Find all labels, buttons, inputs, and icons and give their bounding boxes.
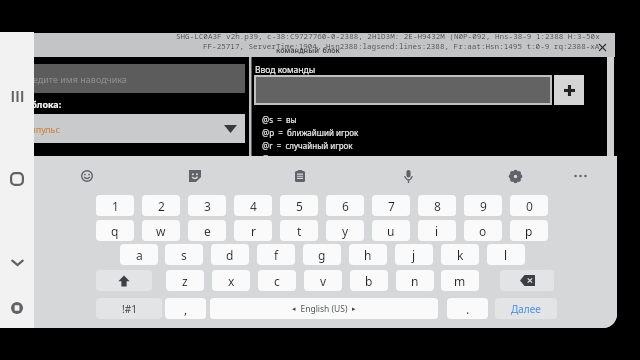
button[interactable]: g <box>303 244 341 265</box>
staticText: q <box>111 223 119 239</box>
staticText: FF-25717, ServerTime:1904, Hsn2388:lagse… <box>203 41 600 51</box>
button[interactable]: v <box>304 270 342 291</box>
staticText: 3 <box>204 198 211 214</box>
staticText: @r = случайный игрок <box>262 140 353 151</box>
button[interactable]: t <box>280 220 318 241</box>
button[interactable]: Импульс <box>12 114 245 143</box>
staticText: m <box>454 273 466 289</box>
staticText: @p = ближайший игрок <box>262 127 359 138</box>
staticText: ▸ <box>352 305 356 313</box>
button[interactable]: x <box>212 270 250 291</box>
button[interactable]: 5 <box>280 195 318 216</box>
button[interactable]: Shift <box>96 270 152 291</box>
staticText: p <box>525 223 533 239</box>
staticText: Далее <box>511 302 541 316</box>
button[interactable]: 7 <box>372 195 410 216</box>
button[interactable]: m <box>441 270 479 291</box>
button[interactable]: Введите имя наводчика <box>12 64 245 93</box>
button[interactable]: , <box>165 298 206 319</box>
staticText: 0 <box>526 198 533 214</box>
staticText: w <box>156 223 166 239</box>
button[interactable]: Space, English (US) <box>210 298 438 319</box>
button[interactable]: k <box>441 244 479 265</box>
button[interactable]: n <box>396 270 434 291</box>
button[interactable]: e <box>188 220 226 241</box>
button[interactable]: Emoji <box>76 165 98 187</box>
button[interactable]: Далее <box>495 298 557 319</box>
button[interactable]: 4 <box>234 195 272 216</box>
button[interactable]: More options <box>569 165 591 187</box>
button[interactable]: z <box>166 270 204 291</box>
staticText: z <box>182 273 188 289</box>
button[interactable]: c <box>258 270 296 291</box>
button[interactable]: Voice input <box>397 165 419 187</box>
button[interactable]: Add command <box>554 75 584 105</box>
button[interactable]: 3 <box>188 195 226 216</box>
button[interactable]: !#1 <box>96 298 162 319</box>
staticText: u <box>387 223 395 239</box>
button[interactable]: r <box>234 220 272 241</box>
staticText: y <box>342 223 349 239</box>
staticText: 7 <box>388 198 395 214</box>
button[interactable]: w <box>142 220 180 241</box>
staticText: o <box>479 223 487 239</box>
button[interactable]: Hide keyboard <box>5 250 29 274</box>
staticText: n <box>411 273 419 289</box>
button[interactable]: h <box>349 244 387 265</box>
staticText: @a = все игроки <box>262 153 329 164</box>
staticText: j <box>412 247 416 263</box>
button[interactable]: 6 <box>326 195 364 216</box>
button[interactable]: 8 <box>418 195 456 216</box>
staticText: b <box>365 273 373 289</box>
staticText: @s = вы <box>262 114 297 125</box>
staticText: Тип блока: <box>12 98 62 110</box>
button[interactable]: Home <box>5 167 29 191</box>
staticText: l <box>504 247 508 263</box>
button[interactable]: u <box>372 220 410 241</box>
staticText: f <box>274 247 279 263</box>
staticText: Ввод команды <box>255 64 316 76</box>
button[interactable]: Settings <box>504 165 526 187</box>
button[interactable]: b <box>350 270 388 291</box>
button[interactable]: Clipboard <box>289 165 311 187</box>
button[interactable]: y <box>326 220 364 241</box>
button[interactable]: . <box>447 298 488 319</box>
button[interactable]: s <box>165 244 203 265</box>
button[interactable]: Switch keyboard <box>5 296 29 320</box>
staticText: i <box>435 223 439 239</box>
staticText: командный блок <box>276 46 340 56</box>
button[interactable]: o <box>464 220 502 241</box>
button[interactable]: i <box>418 220 456 241</box>
staticText: . <box>466 301 470 317</box>
button[interactable]: f <box>257 244 295 265</box>
button[interactable]: Close <box>595 40 609 54</box>
staticText: Импульс <box>22 123 60 135</box>
staticText: , <box>184 301 188 317</box>
button[interactable]: p <box>510 220 548 241</box>
button[interactable]: 9 <box>464 195 502 216</box>
staticText: English (US) <box>296 303 352 315</box>
button[interactable]: j <box>395 244 433 265</box>
staticText: v <box>320 273 327 289</box>
staticText: x <box>228 273 235 289</box>
staticText: t <box>297 223 302 239</box>
staticText: 8 <box>434 198 441 214</box>
staticText: d <box>226 247 234 263</box>
button[interactable]: 1 <box>96 195 134 216</box>
staticText: !#1 <box>122 302 137 316</box>
button[interactable]: Backspace <box>500 270 554 291</box>
staticText: 9 <box>480 198 487 214</box>
button[interactable]: 0 <box>510 195 548 216</box>
button[interactable]: a <box>120 244 158 265</box>
staticText: c <box>274 273 280 289</box>
button[interactable]: l <box>487 244 525 265</box>
button[interactable]: 2 <box>142 195 180 216</box>
staticText: Введите имя наводчика <box>22 73 127 85</box>
button[interactable]: d <box>211 244 249 265</box>
staticText: e <box>204 223 211 239</box>
button[interactable]: q <box>96 220 134 241</box>
button[interactable]: Stickers <box>184 165 206 187</box>
button[interactable]: Recents <box>5 84 29 108</box>
staticText: s <box>181 247 187 263</box>
